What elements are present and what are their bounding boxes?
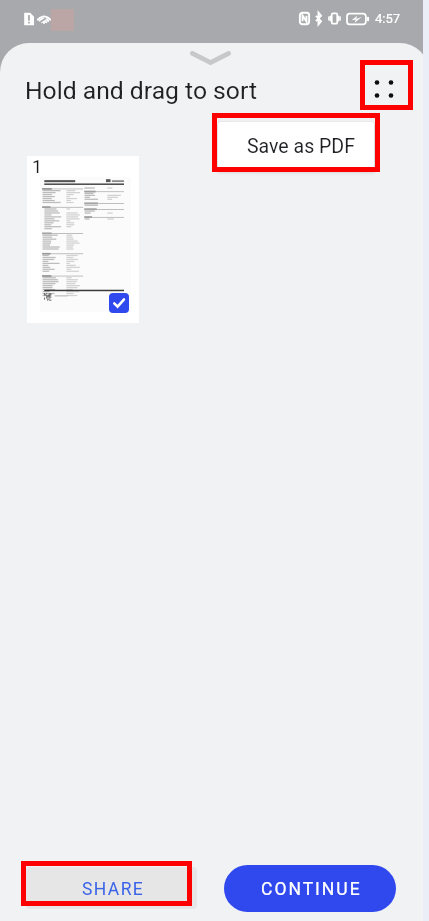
staticText: CONTINUE bbox=[261, 879, 362, 900]
staticText: 4:57 bbox=[375, 11, 401, 26]
button[interactable]: More options bbox=[362, 67, 406, 111]
staticText: Hold and drag to sort bbox=[25, 76, 257, 105]
staticText: Save as PDF bbox=[247, 135, 355, 158]
button[interactable]: Save as PDF bbox=[218, 122, 374, 171]
button[interactable]: CONTINUE bbox=[224, 865, 396, 912]
button[interactable]: SHARE bbox=[26, 867, 197, 909]
staticText: SHARE bbox=[82, 879, 145, 900]
button[interactable]: 1 bbox=[27, 156, 139, 323]
button[interactable]: Page selected bbox=[109, 293, 129, 313]
staticText: 1 bbox=[32, 156, 43, 177]
